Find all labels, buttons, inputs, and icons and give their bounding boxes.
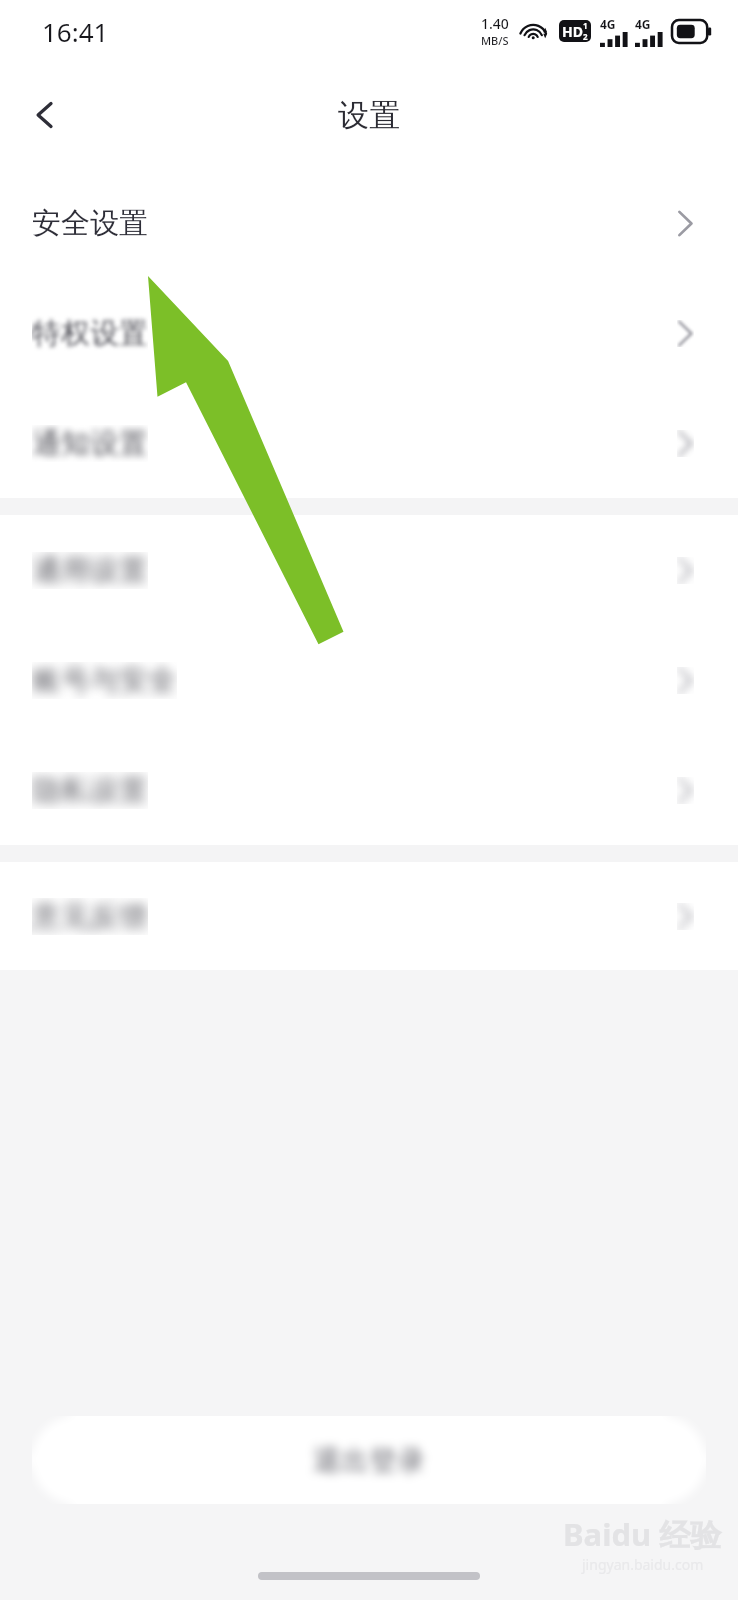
staticText: 1 xyxy=(583,20,588,31)
button[interactable]: Back xyxy=(14,84,76,146)
staticText: 隐私设置 xyxy=(32,772,148,809)
button[interactable]: 账号与安全 xyxy=(0,625,738,735)
button[interactable]: 隐私设置 xyxy=(0,735,738,845)
staticText: 安全设置 xyxy=(32,205,148,242)
staticText: jingyan.baidu.com xyxy=(582,1555,704,1574)
staticText: 账号与安全 xyxy=(32,662,177,699)
staticText: 4G xyxy=(600,16,616,32)
staticText: 通用设置 xyxy=(32,552,148,589)
button[interactable]: 通用设置 xyxy=(0,515,738,625)
staticText: 设置 xyxy=(338,96,400,135)
staticText: MB/S xyxy=(481,33,509,48)
button[interactable]: 安全设置 xyxy=(0,168,738,278)
staticText: 意见反馈 xyxy=(32,898,148,935)
button[interactable]: 特权设置 xyxy=(0,278,738,388)
staticText: 退出登录 xyxy=(313,1443,425,1478)
staticText: 1.40 xyxy=(481,14,509,33)
staticText: 2 xyxy=(583,31,588,42)
button[interactable]: 退出登录 xyxy=(32,1416,706,1504)
staticText: 特权设置 xyxy=(32,315,148,352)
staticText: 4G xyxy=(635,16,651,32)
staticText: Baidu 经验 xyxy=(563,1513,722,1555)
staticText: 16:41 xyxy=(42,14,109,49)
button[interactable]: 意见反馈 xyxy=(0,862,738,970)
button[interactable]: 通知设置 xyxy=(0,388,738,498)
staticText: 通知设置 xyxy=(32,425,148,462)
staticText: HD xyxy=(562,22,583,41)
